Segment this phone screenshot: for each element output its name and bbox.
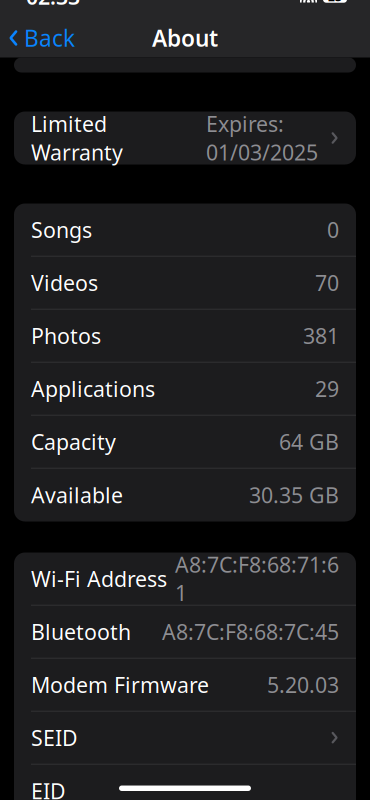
- staticText: 29: [315, 374, 339, 403]
- staticText: 64 GB: [279, 427, 339, 456]
- staticText: 0: [327, 215, 339, 244]
- staticText: 381: [303, 321, 339, 350]
- staticText: Applications: [31, 374, 155, 403]
- staticText: Wi-Fi Address: [31, 564, 167, 593]
- staticText: Songs: [31, 215, 92, 244]
- staticText: Available: [31, 481, 123, 509]
- staticText: SEID: [31, 723, 78, 752]
- button[interactable]: Songs: [14, 203, 356, 256]
- staticText: About: [152, 23, 218, 53]
- button[interactable]: Wi-Fi Address: [14, 552, 356, 605]
- button[interactable]: Available: [14, 468, 356, 521]
- button[interactable]: Modem Firmware: [14, 658, 356, 711]
- staticText: Modem Firmware: [31, 670, 209, 699]
- button[interactable]: EID: [14, 764, 356, 800]
- staticText: 30.35 GB: [249, 481, 339, 509]
- staticText: 23: [328, 0, 342, 4]
- staticText: Videos: [31, 268, 98, 297]
- staticText: Capacity: [31, 427, 116, 456]
- staticText: 70: [315, 268, 339, 297]
- staticText: A8:7C:F8:68:7C:45: [162, 617, 339, 646]
- staticText: Limited Warranty: [31, 110, 123, 166]
- button[interactable]: Photos: [14, 309, 356, 362]
- staticText: Expires: 01/03/2025: [206, 110, 318, 166]
- staticText: 5.20.03: [267, 670, 339, 699]
- staticText: Bluetooth: [31, 617, 131, 646]
- staticText: Photos: [31, 321, 101, 350]
- button[interactable]: Applications: [14, 362, 356, 415]
- staticText: A8:7C:F8:68:71:61: [175, 550, 339, 607]
- button[interactable]: Capacity: [14, 415, 356, 468]
- button[interactable]: Limited Warranty: [14, 111, 356, 164]
- staticText: EID: [31, 777, 66, 800]
- staticText: 02:33: [26, 0, 80, 11]
- staticText: Back: [24, 23, 75, 53]
- button[interactable]: Back: [0, 16, 85, 60]
- button[interactable]: SEID: [14, 711, 356, 764]
- button[interactable]: Videos: [14, 256, 356, 309]
- button[interactable]: Bluetooth: [14, 605, 356, 658]
